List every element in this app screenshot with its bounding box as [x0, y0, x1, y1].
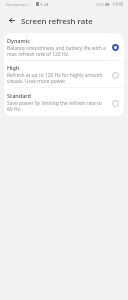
staticText: Dynamic: [7, 37, 30, 44]
staticText: Balance smoothness and battery life with…: [7, 45, 106, 57]
staticText: 22%: [96, 2, 104, 7]
staticText: Screen refresh rate: [21, 16, 93, 27]
button[interactable]: Standard: [4, 88, 124, 116]
staticText: Save power by limiting the refresh rate …: [7, 100, 102, 112]
staticText: Refresh at up to 120 Hz for highly smoot…: [7, 72, 103, 84]
staticText: Standard: [7, 92, 31, 99]
button[interactable]: High: [4, 61, 124, 87]
staticText: High: [7, 64, 20, 71]
staticText: 14:48: [112, 1, 124, 7]
button[interactable]: Back: [0, 11, 21, 29]
button[interactable]: Dynamic: [4, 33, 124, 60]
staticText: Emergency c...: [6, 2, 31, 7]
